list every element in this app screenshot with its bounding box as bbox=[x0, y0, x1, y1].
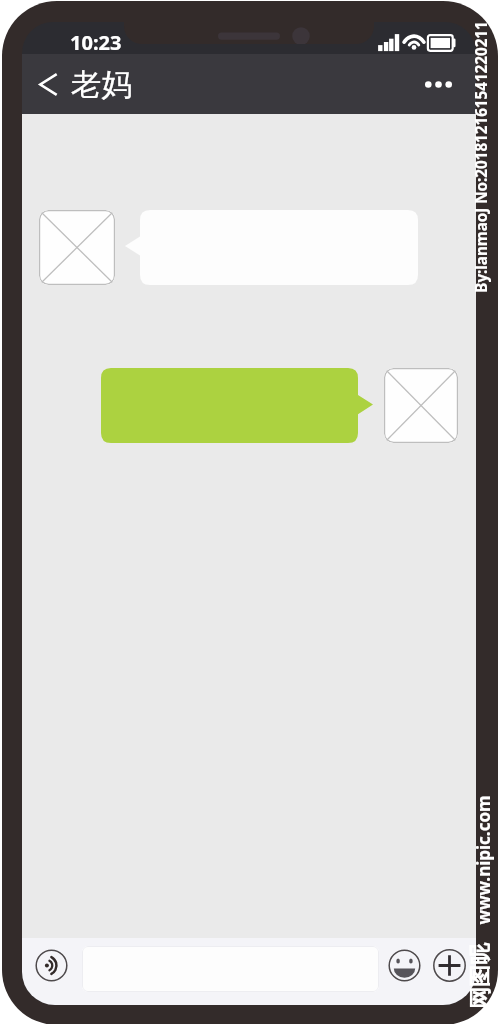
button[interactable]: More actions bbox=[433, 949, 466, 982]
button[interactable]: Profile picture bbox=[384, 368, 458, 443]
button[interactable] bbox=[125, 210, 418, 285]
staticText: www.nipic.com bbox=[472, 795, 495, 925]
staticText: By:lanmaoJ No:201812161541220211 bbox=[471, 21, 492, 293]
staticText: 网图昵 bbox=[466, 943, 494, 1009]
button[interactable]: Voice message bbox=[35, 949, 68, 982]
staticText: 10:23 bbox=[70, 29, 122, 56]
staticText: 老妈 bbox=[71, 66, 132, 104]
button[interactable] bbox=[101, 368, 373, 443]
button[interactable] bbox=[82, 946, 379, 992]
button[interactable]: Emoji bbox=[388, 949, 421, 982]
button[interactable]: 老妈 bbox=[22, 57, 144, 111]
button[interactable]: Profile picture bbox=[39, 210, 115, 285]
button[interactable]: More options bbox=[409, 63, 476, 106]
